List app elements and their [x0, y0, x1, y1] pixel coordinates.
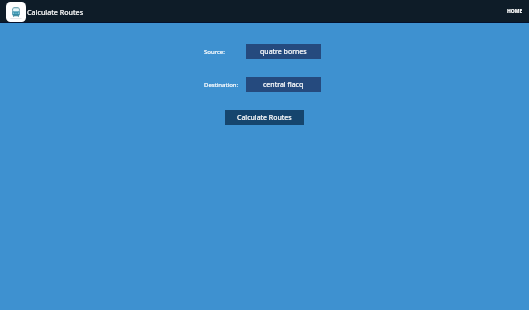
staticText: Destination: — [204, 81, 239, 89]
staticText: Calculate Routes — [237, 113, 292, 123]
staticText: HOME — [507, 8, 523, 15]
staticText: quatre bornes — [260, 47, 307, 57]
button[interactable]: HOME — [501, 4, 529, 19]
button[interactable]: App logo — [6, 2, 26, 22]
button[interactable]: Calculate Routes — [225, 110, 304, 125]
staticText: Calculate Routes — [27, 7, 84, 17]
staticText: central flacq — [263, 80, 304, 90]
button[interactable]: central flacq — [246, 77, 321, 92]
button[interactable]: quatre bornes — [246, 44, 321, 59]
staticText: Source: — [204, 48, 225, 56]
